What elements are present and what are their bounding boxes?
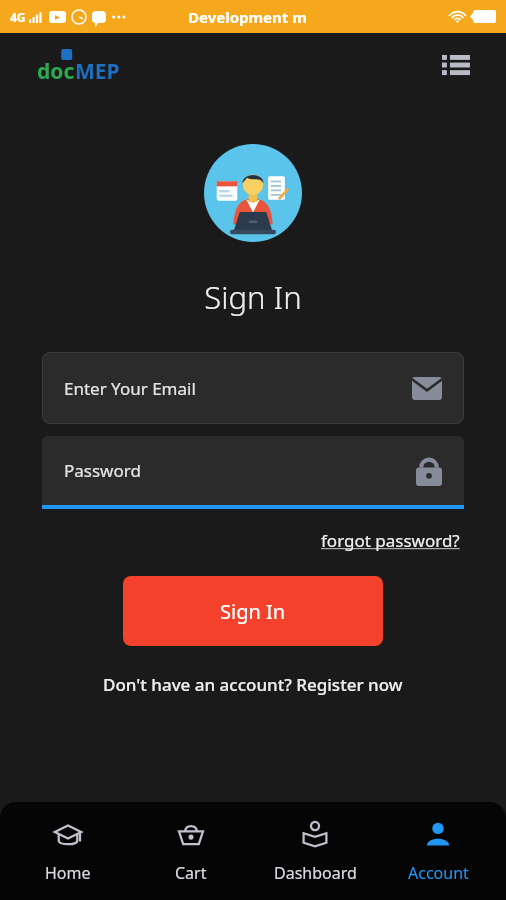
button[interactable]: Cart	[136, 816, 246, 888]
staticText: Development m	[188, 7, 307, 27]
button[interactable]: forgot password?	[317, 525, 464, 556]
button[interactable]: Don't have an account? Register now	[0, 673, 506, 696]
button[interactable]: Enter Your Email	[42, 352, 464, 424]
staticText: Sign In	[220, 598, 286, 625]
button[interactable]: Account	[383, 816, 493, 888]
staticText: Dashboard	[274, 862, 357, 884]
staticText: doc	[37, 57, 75, 86]
button[interactable]: Password	[42, 436, 464, 509]
staticText: Enter Your Email	[64, 377, 196, 400]
staticText: 4G	[10, 9, 26, 25]
staticText: Password	[64, 459, 141, 482]
staticText: Account	[408, 862, 469, 884]
button[interactable]: Home	[13, 816, 123, 888]
button[interactable]: Sign In	[123, 576, 383, 646]
staticText: forgot password?	[321, 529, 460, 552]
staticText: Sign In	[0, 276, 506, 318]
staticText: Cart	[175, 862, 207, 884]
button[interactable]: Menu	[436, 46, 476, 86]
button[interactable]: Dashboard	[260, 816, 370, 888]
staticText: MEP	[75, 57, 120, 86]
staticText: Home	[45, 862, 91, 884]
staticText: Don't have an account? Register now	[103, 673, 403, 696]
